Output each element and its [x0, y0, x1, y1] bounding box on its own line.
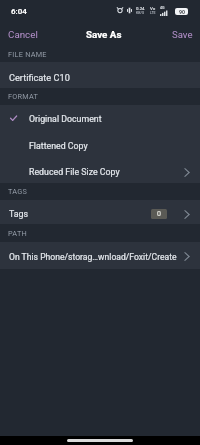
staticText: Original Document [29, 114, 102, 124]
button[interactable]: Certificate C10 [0, 62, 200, 88]
staticText: Tags [9, 209, 29, 219]
button[interactable]: Cancel [0, 22, 56, 46]
staticText: PATH [8, 229, 27, 238]
staticText: On This Phone/storag…wnload/Foxit/Create [9, 252, 177, 262]
staticText: 0.24 [136, 6, 145, 11]
staticText: Reduced File Size Copy [29, 167, 120, 177]
staticText: FILE NAME [8, 50, 47, 59]
staticText: 6:04 [11, 7, 27, 16]
staticText: Vo [150, 6, 156, 11]
staticText: Save As [86, 29, 122, 40]
button[interactable]: Reduced File Size Copy [0, 157, 200, 183]
staticText: Save [172, 29, 193, 40]
staticText: FORMAT [8, 92, 39, 101]
staticText: Flattened Copy [29, 141, 88, 151]
staticText: TAGS [8, 187, 28, 196]
staticText: Cancel [8, 29, 38, 40]
staticText: 4G [160, 6, 165, 10]
button[interactable]: On This Phone/storag…wnload/Foxit/Create [0, 242, 200, 269]
button[interactable]: Flattened Copy [0, 131, 200, 157]
button[interactable]: Tags [0, 200, 200, 224]
button[interactable]: Save [172, 22, 200, 46]
button[interactable]: Original Document [0, 105, 200, 131]
staticText: 90 [179, 9, 185, 15]
staticText: Certificate C10 [9, 72, 70, 83]
staticText: KB/S [136, 11, 145, 15]
staticText: LTE [150, 11, 156, 15]
staticText: 0 [157, 210, 161, 218]
